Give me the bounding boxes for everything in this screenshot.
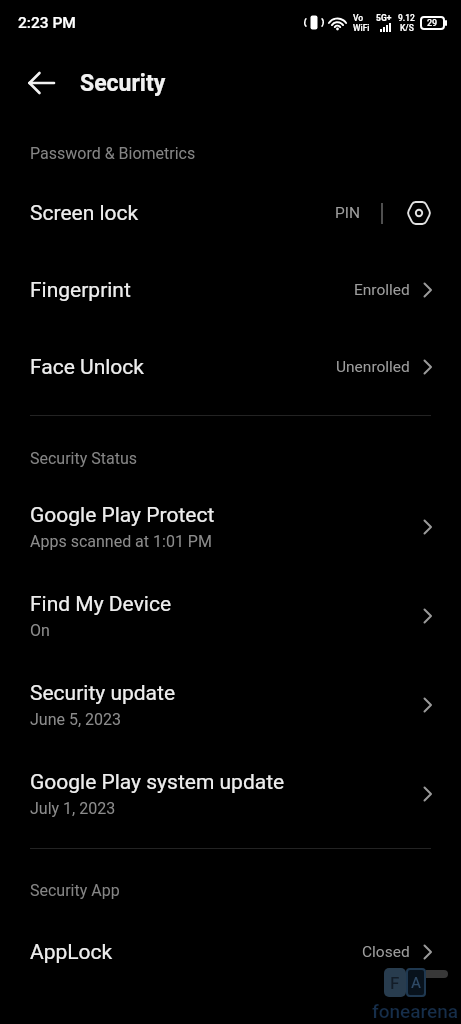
staticText: Enrolled: [354, 281, 410, 299]
staticText: Vo: [353, 13, 364, 23]
button[interactable]: Security update: [0, 660, 461, 749]
button[interactable]: Find My Device: [0, 571, 461, 660]
staticText: Security update: [30, 681, 176, 706]
staticText: Face Unlock: [30, 355, 144, 380]
staticText: Closed: [362, 943, 410, 961]
staticText: Screen lock: [30, 201, 139, 226]
button[interactable]: Fingerprint: [0, 262, 461, 318]
button[interactable]: Google Play system update: [0, 749, 461, 838]
staticText: WiFi: [353, 23, 370, 33]
staticText: 9.12: [398, 13, 415, 23]
staticText: Security: [80, 70, 166, 97]
staticText: July 1, 2023: [30, 799, 116, 818]
staticText: 2:23 PM: [18, 14, 76, 32]
staticText: PIN: [335, 204, 361, 222]
staticText: Google Play system update: [30, 770, 285, 795]
staticText: A: [411, 974, 421, 992]
staticText: Security App: [30, 881, 120, 900]
button[interactable]: AppLock: [0, 924, 461, 980]
staticText: K/S: [400, 23, 414, 33]
staticText: AppLock: [30, 940, 113, 965]
staticText: fonearena: [372, 1000, 459, 1022]
staticText: Password & Biometrics: [30, 144, 196, 163]
staticText: F: [390, 973, 400, 993]
staticText: Google Play Protect: [30, 503, 215, 528]
staticText: Apps scanned at 1:01 PM: [30, 532, 212, 551]
staticText: Fingerprint: [30, 278, 131, 303]
button[interactable]: Screen lock: [0, 185, 461, 241]
staticText: June 5, 2023: [30, 710, 122, 729]
staticText: Find My Device: [30, 592, 172, 617]
button[interactable]: [28, 63, 68, 103]
staticText: Security Status: [30, 449, 138, 468]
button[interactable]: Google Play Protect: [0, 482, 461, 571]
staticText: On: [30, 621, 50, 640]
staticText: Unenrolled: [336, 358, 410, 376]
staticText: 5G+: [376, 13, 392, 23]
button[interactable]: Face Unlock: [0, 339, 461, 395]
staticText: 29: [427, 18, 438, 29]
